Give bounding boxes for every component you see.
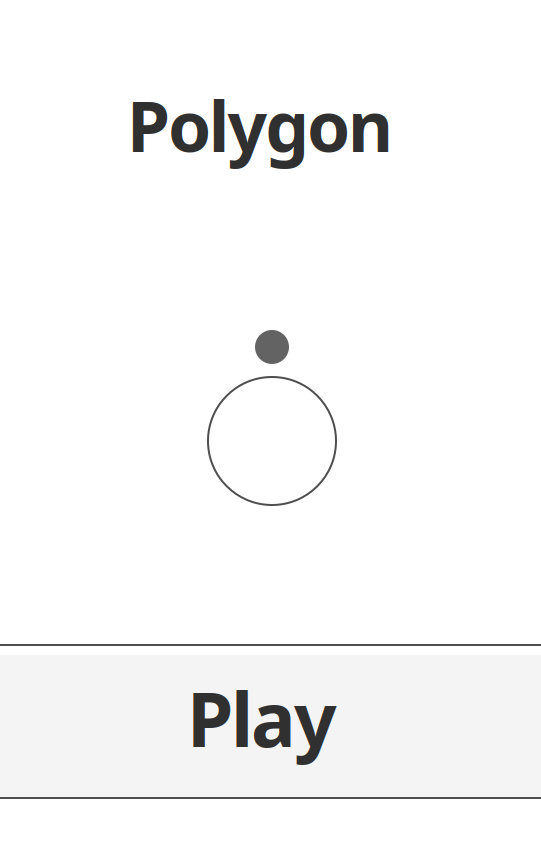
staticText: Polygon xyxy=(127,79,393,171)
button[interactable]: Play xyxy=(0,655,541,797)
staticText: Play xyxy=(187,668,337,768)
